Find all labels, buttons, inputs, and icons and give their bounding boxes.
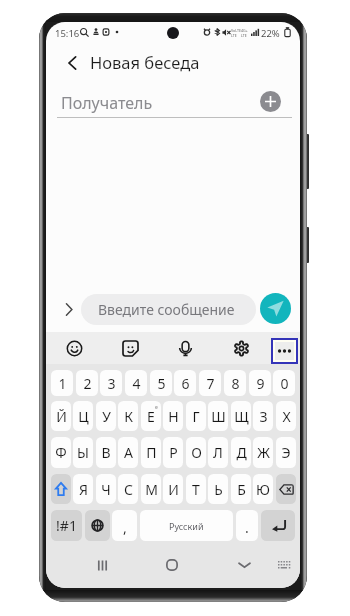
button[interactable]: П	[141, 437, 161, 468]
button[interactable]: Введите сообщение	[81, 294, 256, 325]
staticText: У	[102, 407, 111, 426]
staticText: 0	[280, 374, 289, 393]
button[interactable]: ,	[112, 510, 137, 541]
button[interactable]: Voice input	[174, 332, 196, 364]
button[interactable]: Back	[57, 48, 87, 78]
staticText: В	[101, 443, 111, 462]
staticText: П	[146, 443, 157, 462]
button[interactable]: 1	[51, 370, 73, 396]
button[interactable]: С	[118, 474, 138, 504]
button[interactable]: К	[118, 401, 138, 431]
staticText: 5	[157, 374, 166, 393]
button[interactable]: Ф	[51, 437, 71, 468]
staticText: Щ	[234, 407, 249, 426]
button[interactable]: 5	[150, 370, 172, 396]
button[interactable]: Р	[163, 437, 183, 468]
button[interactable]: Т	[186, 474, 206, 504]
staticText: 22%	[261, 27, 280, 40]
button[interactable]: 3	[100, 370, 122, 396]
button[interactable]: Switch keyboard	[272, 542, 296, 588]
staticText: 4G+	[241, 28, 248, 33]
button[interactable]	[276, 474, 296, 504]
button[interactable]: 9	[249, 370, 271, 396]
button[interactable]: Г	[186, 401, 206, 431]
button[interactable]: Stickers	[119, 332, 141, 364]
staticText: Р	[169, 443, 178, 462]
staticText: Ю	[256, 480, 270, 499]
button[interactable]: Expand toolbar	[58, 298, 80, 320]
staticText: LTE	[241, 33, 247, 38]
staticText: Б	[237, 480, 246, 499]
staticText: Новая беседа	[90, 51, 200, 73]
button[interactable]: 7	[199, 370, 221, 396]
button[interactable]	[261, 510, 295, 541]
button[interactable]: 2	[76, 370, 98, 396]
button[interactable]: М	[141, 474, 161, 504]
button[interactable]: Ы	[73, 437, 93, 468]
button[interactable]	[51, 474, 71, 504]
button[interactable]: Ч	[96, 474, 116, 504]
staticText: 8	[231, 374, 240, 393]
button[interactable]: Б	[231, 474, 251, 504]
staticText: Русский	[169, 520, 204, 532]
button[interactable]: Emoji	[63, 332, 85, 364]
button[interactable]: Ш	[208, 401, 228, 431]
button[interactable]: Х	[276, 401, 296, 431]
button[interactable]: В	[96, 437, 116, 468]
button[interactable]: More options	[275, 342, 294, 360]
button[interactable]: 0	[273, 370, 295, 396]
staticText: Ь	[214, 480, 223, 499]
staticText: ,	[123, 518, 127, 537]
staticText: 7	[206, 374, 215, 393]
staticText: О	[191, 443, 202, 462]
staticText: К	[124, 407, 133, 426]
button[interactable]: Recents	[90, 542, 114, 588]
button[interactable]: О	[186, 437, 206, 468]
button[interactable]: Е	[141, 401, 161, 431]
button[interactable]: Home	[160, 542, 184, 588]
button[interactable]	[85, 510, 110, 541]
button[interactable]: Hide keyboard	[232, 542, 256, 588]
button[interactable]: Ь	[208, 474, 228, 504]
button[interactable]: Я	[73, 474, 93, 504]
staticText: VoLTE	[231, 28, 242, 33]
staticText: Т	[192, 480, 200, 499]
staticText: 1	[58, 374, 67, 393]
button[interactable]: Д	[231, 437, 251, 468]
button[interactable]: Send	[260, 293, 291, 324]
button[interactable]: З	[253, 401, 273, 431]
button[interactable]: !#1	[51, 510, 82, 541]
button[interactable]: Й	[51, 401, 71, 431]
staticText: З	[259, 407, 268, 426]
button[interactable]: Settings	[230, 332, 252, 364]
button[interactable]: Ю	[253, 474, 273, 504]
button[interactable]: Л	[208, 437, 228, 468]
staticText: С	[124, 480, 133, 499]
staticText: Введите сообщение	[98, 300, 235, 319]
button[interactable]: 6	[174, 370, 196, 396]
button[interactable]: Add recipient	[260, 91, 281, 112]
button[interactable]: Щ	[231, 401, 251, 431]
staticText: 3	[107, 374, 116, 393]
button[interactable]: .	[236, 510, 258, 541]
button[interactable]: Н	[163, 401, 183, 431]
staticText: Получатель	[61, 92, 153, 114]
button[interactable]: А	[118, 437, 138, 468]
staticText: .	[245, 518, 249, 537]
staticText: е	[155, 404, 158, 411]
staticText: Ц	[78, 407, 89, 426]
staticText: Ф	[55, 443, 67, 462]
button[interactable]: Э	[276, 437, 296, 468]
staticText: Ш	[211, 407, 226, 426]
staticText: 4	[132, 374, 141, 393]
button[interactable]: Ж	[253, 437, 273, 468]
button[interactable]: Русский	[140, 510, 233, 541]
button[interactable]: 4	[125, 370, 147, 396]
button[interactable]: 8	[224, 370, 246, 396]
button[interactable]: Ц	[73, 401, 93, 431]
button[interactable]: У	[96, 401, 116, 431]
button[interactable]: И	[163, 474, 183, 504]
staticText: 2	[83, 374, 92, 393]
staticText: 15:16	[55, 27, 80, 40]
staticText: Й	[56, 407, 67, 426]
